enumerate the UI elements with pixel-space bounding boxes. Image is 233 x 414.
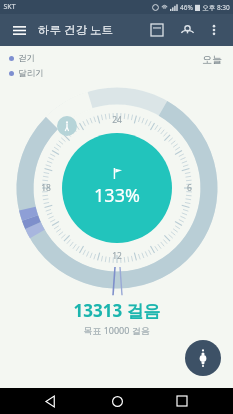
staticText: 오늘 <box>202 53 222 66</box>
button[interactable]: Back <box>36 388 66 414</box>
staticText: 하루 건강 노트 <box>38 22 113 38</box>
staticText: 6 <box>187 182 192 194</box>
button[interactable]: Home <box>102 388 132 414</box>
button[interactable]: Calendar <box>145 18 169 42</box>
button[interactable]: 오늘 <box>200 53 224 66</box>
staticText: 13313 걸음 <box>73 299 161 322</box>
button[interactable]: More options <box>203 19 225 41</box>
staticText: 133% <box>94 183 140 208</box>
button[interactable]: Menu <box>8 19 30 41</box>
staticText: 목표 10000 걸음 <box>83 324 150 336</box>
staticText: 걷기 <box>18 53 35 64</box>
button[interactable]: Add entry <box>185 340 221 376</box>
staticText: 12 <box>112 250 122 262</box>
staticText: 18 <box>41 182 51 194</box>
button[interactable]: Recents <box>167 388 197 414</box>
button[interactable]: Location <box>175 18 199 42</box>
other: Walking activity <box>57 116 77 136</box>
staticText: SKT <box>3 2 16 12</box>
staticText: 24 <box>112 114 122 126</box>
staticText: 46% <box>180 3 193 12</box>
staticText: 오후 8:30 <box>202 3 230 12</box>
staticText: 달리기 <box>18 68 44 79</box>
